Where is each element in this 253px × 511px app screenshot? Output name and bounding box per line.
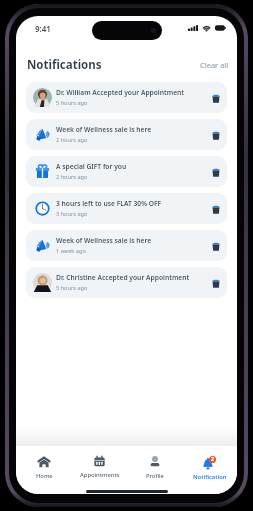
staticText: Week of Wellness sale is here: [56, 236, 152, 245]
staticText: 1 week ago: [56, 247, 86, 255]
staticText: Profile: [146, 472, 164, 480]
button[interactable]: Dr. William Accepted your Appointment: [26, 82, 227, 113]
staticText: 5 hours ago: [56, 284, 88, 292]
button[interactable]: 2: [182, 446, 237, 480]
staticText: Notification: [193, 473, 227, 480]
button[interactable]: Delete notification: [209, 128, 223, 142]
staticText: Appointments: [80, 471, 120, 479]
button[interactable]: 3 hours left to use FLAT 30% OFF: [26, 193, 227, 224]
button[interactable]: Dr. Christine Accepted your Appointment: [26, 267, 227, 298]
button[interactable]: Profile: [127, 446, 182, 480]
staticText: Dr. Christine Accepted your Appointment: [56, 273, 190, 282]
staticText: Notifications: [27, 57, 102, 73]
button[interactable]: Delete notification: [209, 276, 223, 290]
button[interactable]: Delete notification: [209, 202, 223, 216]
staticText: Home: [36, 472, 53, 480]
staticText: 3 hours left to use FLAT 30% OFF: [56, 199, 162, 208]
staticText: 9:41: [35, 23, 51, 34]
staticText: 2: [211, 456, 214, 463]
staticText: 2 hours ago: [56, 136, 88, 144]
staticText: A special GIFT for you: [56, 162, 127, 171]
staticText: Clear all: [200, 60, 229, 70]
button[interactable]: Week of Wellness sale is here: [26, 230, 227, 261]
button[interactable]: Delete notification: [209, 91, 223, 105]
button[interactable]: Week of Wellness sale is here: [26, 119, 227, 150]
button[interactable]: A special GIFT for you: [26, 156, 227, 187]
staticText: 5 hours ago: [56, 99, 88, 107]
staticText: 3 hours ago: [56, 210, 88, 218]
button[interactable]: Delete notification: [209, 165, 223, 179]
staticText: Dr. William Accepted your Appointment: [56, 88, 185, 97]
staticText: Week of Wellness sale is here: [56, 125, 152, 134]
button[interactable]: Home: [16, 446, 72, 480]
button[interactable]: Delete notification: [209, 239, 223, 253]
button[interactable]: Appointments: [72, 446, 127, 480]
button[interactable]: Clear all: [199, 56, 230, 74]
staticText: 2 hours ago: [56, 173, 88, 181]
